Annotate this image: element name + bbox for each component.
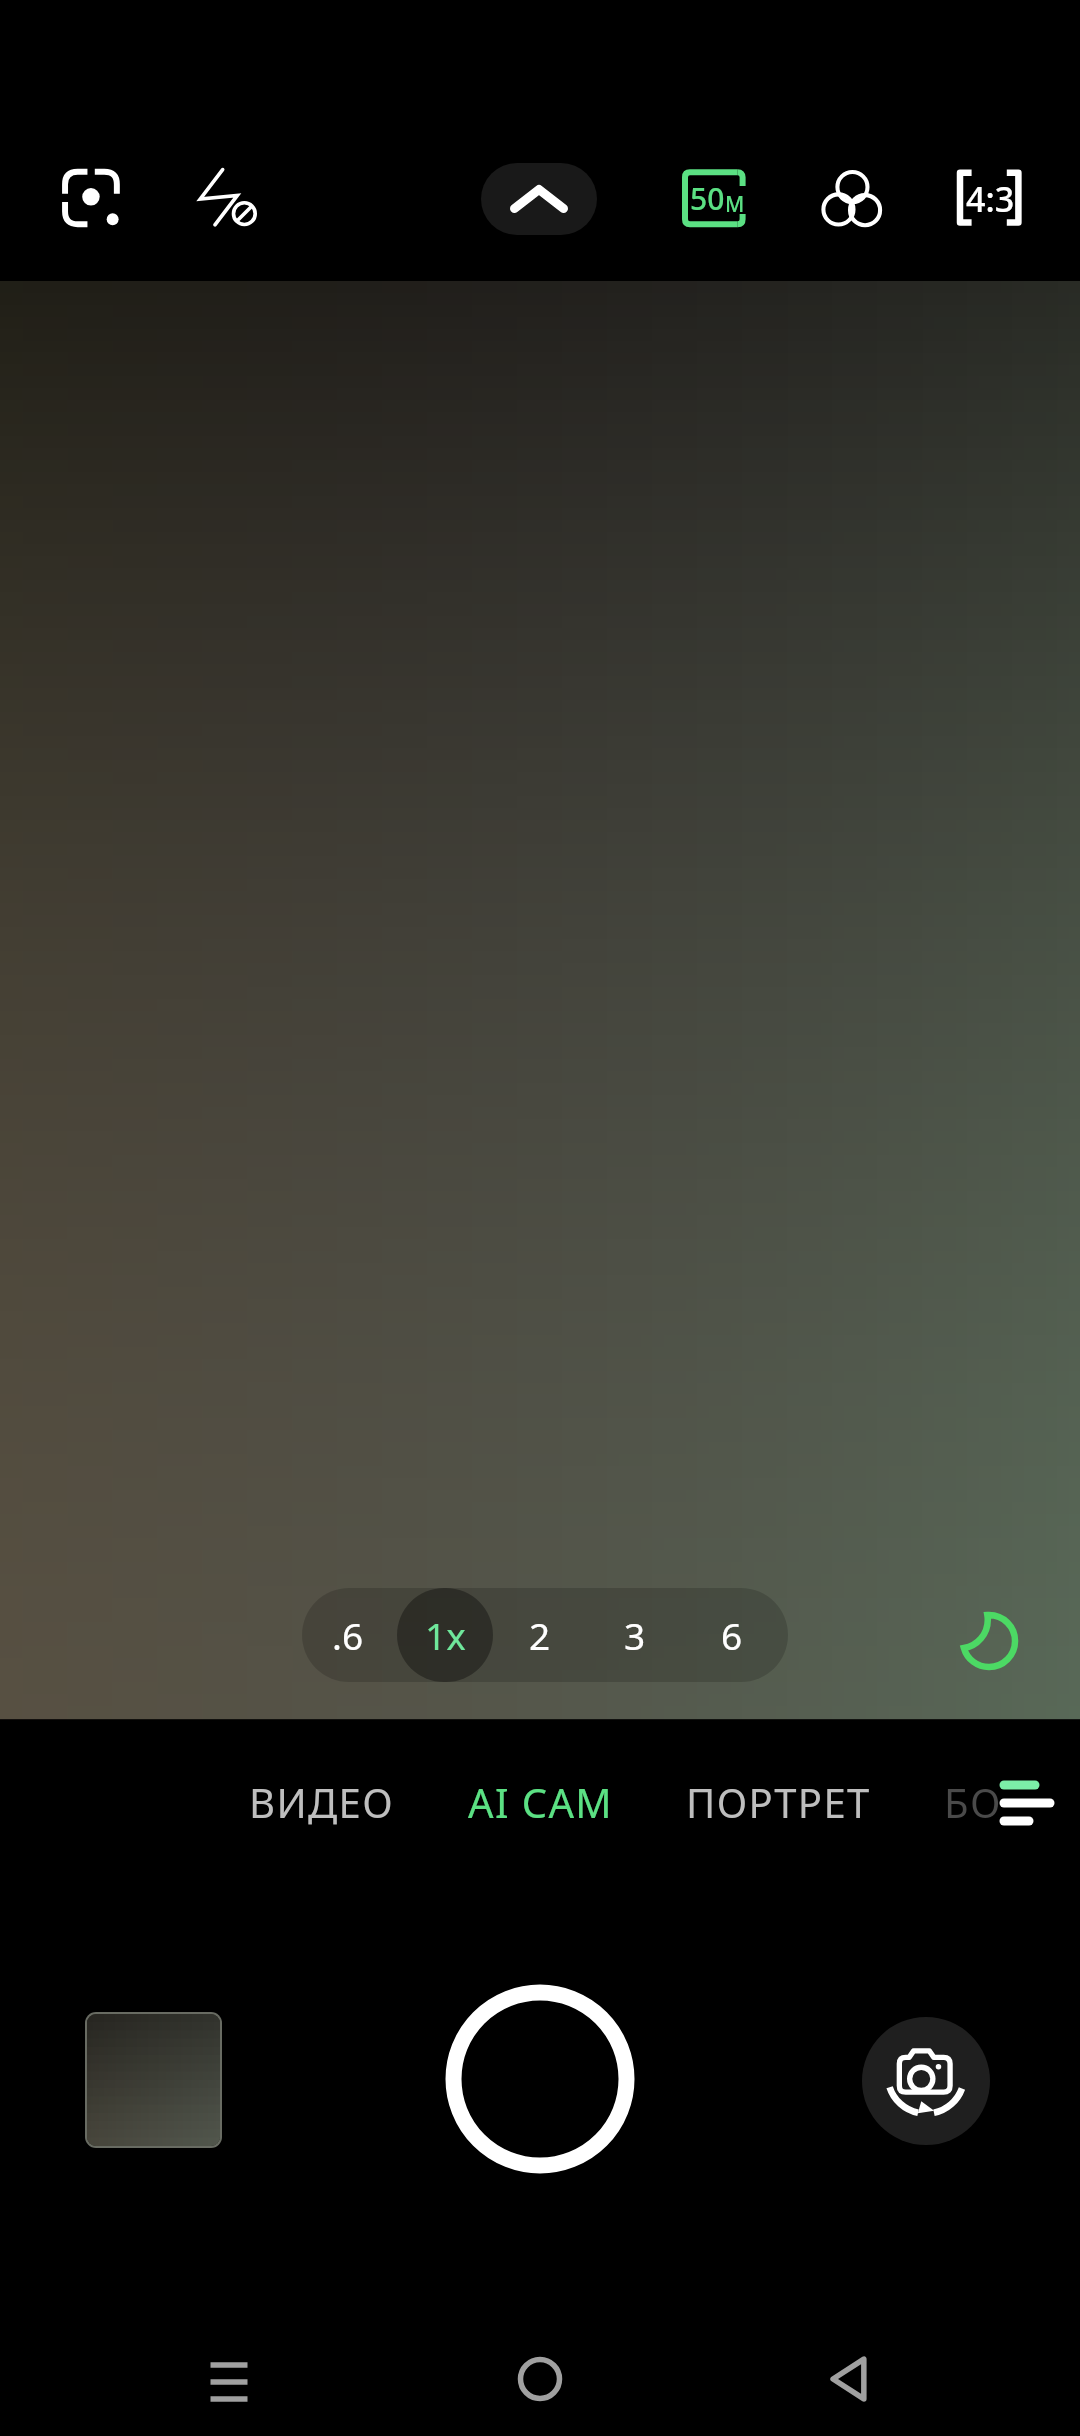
staticText: 4:3 [966,176,1015,222]
button[interactable]: ПОРТРЕТ [682,1755,875,1855]
button[interactable]: Flash off [195,165,265,235]
button[interactable]: Switch camera [862,2017,990,2145]
button[interactable]: Back [803,2334,893,2424]
staticText: 50 [690,178,725,219]
button[interactable]: Night mode [941,1593,1037,1689]
staticText: БО [944,1775,1002,1829]
button[interactable]: Expand settings [481,163,597,235]
button[interactable]: Take photo [436,1975,644,2183]
staticText: M [725,190,745,219]
staticText: 2 [529,1610,551,1660]
staticText: 6 [721,1610,743,1660]
staticText: AI CAM [468,1775,614,1829]
button[interactable]: Home [495,2334,585,2424]
button[interactable]: 50 megapixel [675,165,755,235]
button[interactable]: 2 [492,1588,588,1682]
button[interactable]: AI CAM [464,1755,618,1855]
button[interactable]: БО [940,1755,1006,1855]
staticText: ВИДЕО [249,1775,395,1829]
button[interactable]: .6 [302,1588,396,1682]
staticText: .6 [332,1610,364,1660]
staticText: 3 [624,1610,646,1660]
button[interactable]: 3 [587,1588,683,1682]
button[interactable]: Colour filters [815,165,885,235]
staticText: ПОРТРЕТ [686,1775,871,1829]
staticText: 1x [425,1610,466,1660]
button[interactable]: AI scan [57,165,127,235]
button[interactable]: Aspect ratio 4 to 3 [950,165,1030,235]
button[interactable]: 6 [684,1588,780,1682]
button[interactable]: More camera modes [992,1769,1062,1841]
button[interactable]: Gallery [87,2014,220,2146]
button[interactable]: Recent apps [184,2334,274,2424]
button[interactable]: 1x [397,1588,493,1682]
button[interactable]: ВИДЕО [245,1755,399,1855]
